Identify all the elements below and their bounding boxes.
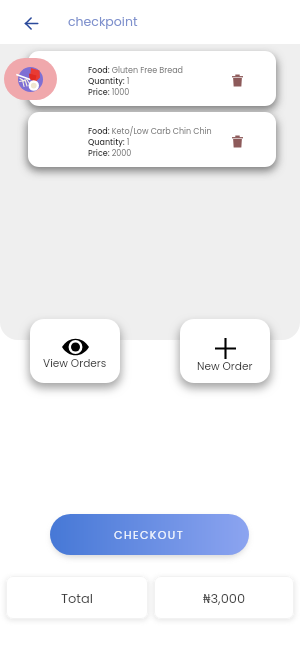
staticText: View Orders — [43, 356, 107, 371]
staticText: checkpoint — [68, 13, 138, 30]
staticText: Price: 2000 — [88, 148, 132, 159]
button[interactable]: Back — [18, 10, 44, 36]
staticText: ₦3,000 — [203, 589, 246, 607]
button[interactable]: View Orders — [30, 319, 120, 383]
button[interactable]: ₦3,000 — [154, 576, 294, 619]
button[interactable]: New Order — [180, 319, 270, 383]
staticText: Price: 1000 — [88, 87, 130, 98]
staticText: Quantity: 1 — [88, 137, 130, 148]
staticText: Food: Keto/Low Carb Chin Chin — [88, 126, 212, 137]
button[interactable]: Delete — [228, 130, 247, 152]
staticText: Food: Gluten Free Bread — [88, 65, 183, 76]
button[interactable]: Food: Keto/Low Carb Chin Chin — [28, 112, 276, 167]
staticText: CHECKOUT — [114, 527, 185, 542]
staticText: Quantity: 1 — [88, 76, 130, 87]
staticText: New Order — [197, 359, 253, 374]
button[interactable]: Total — [6, 576, 148, 619]
staticText: Total — [61, 589, 94, 607]
button[interactable]: Food: Gluten Free Bread — [28, 51, 276, 106]
button[interactable]: CHECKOUT — [50, 514, 249, 555]
button[interactable]: Delete — [228, 69, 247, 91]
